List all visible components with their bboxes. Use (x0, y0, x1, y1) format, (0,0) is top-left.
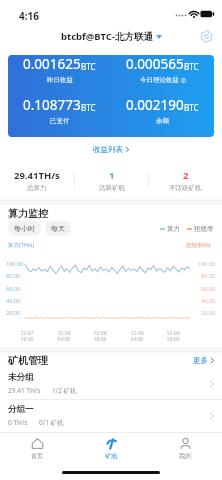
button[interactable]: 拒绝率 (187, 225, 214, 233)
staticText: 4:16 (19, 9, 39, 23)
button[interactable]: 0.001625 (8, 55, 111, 84)
button[interactable]: 每小时 (8, 221, 41, 236)
button[interactable]: 更多 (193, 356, 215, 365)
staticText: 未分组 (8, 372, 34, 383)
button[interactable]: 29.41TH/s (0, 169, 74, 192)
staticText: 0 TH/s (8, 418, 28, 427)
staticText: 我的 (179, 452, 191, 460)
staticText: 算力 (167, 225, 180, 233)
staticText: 80.00 (201, 272, 216, 279)
staticText: 每小时 (14, 224, 35, 233)
staticText: 总算力 (27, 184, 47, 192)
staticText: 首页 (31, 452, 43, 460)
button[interactable]: 1 (75, 169, 148, 192)
staticText: 29.41 TH/s (8, 386, 41, 395)
button[interactable]: 收益列表 (0, 137, 222, 161)
staticText: 12-07 16:00 (20, 330, 34, 343)
staticText: 余额 (156, 117, 169, 125)
button[interactable]: 0.002190 (111, 96, 214, 125)
button[interactable]: 矿池 (74, 433, 148, 464)
staticText: 2 (183, 169, 189, 182)
staticText: 12-09 04:00 (130, 330, 144, 343)
staticText: 更多 (193, 356, 208, 365)
staticText: 分组一 (8, 404, 34, 415)
staticText: 1 (109, 169, 115, 182)
staticText: 0.001625 (23, 55, 81, 73)
staticText: 20.00 (201, 309, 216, 316)
staticText: 40.00 (6, 297, 21, 304)
staticText: BTC (81, 102, 96, 113)
button[interactable]: Settings (196, 26, 216, 46)
button[interactable]: 分组一 (0, 400, 222, 431)
staticText: BTC (184, 102, 199, 113)
staticText: 29.41TH/s (14, 169, 60, 182)
staticText: 60.00 (201, 285, 216, 292)
staticText: 0/1 矿机 (39, 418, 64, 427)
staticText: 每天 (51, 224, 65, 233)
staticText: 矿机管理 (8, 354, 48, 367)
staticText: 12-08 16:00 (93, 330, 107, 343)
staticText: 算力(TH/s) (8, 241, 35, 249)
button[interactable]: 首页 (0, 433, 74, 464)
staticText: 0.000565 (126, 55, 184, 73)
button[interactable]: btcbf@BTC-北方联通 (61, 30, 162, 43)
button[interactable]: 2 (149, 169, 222, 192)
staticText: btcbf@BTC-北方联通 (61, 30, 153, 43)
staticText: 拒绝率(%) (186, 241, 211, 249)
staticText: 0.108773 (23, 96, 81, 114)
staticText: 算力监控 (8, 207, 48, 220)
staticText: 80.00 (6, 272, 21, 279)
button[interactable]: 未分组 (0, 368, 222, 400)
button[interactable]: 我的 (148, 433, 222, 464)
staticText: 活跃矿机 (99, 184, 125, 192)
staticText: 不活跃矿机 (169, 184, 202, 192)
staticText: 拒绝率 (194, 225, 214, 233)
button[interactable]: 0.000565 (111, 55, 214, 84)
staticText: BTC (81, 61, 96, 72)
staticText: 1/2 矿机 (52, 386, 77, 395)
button[interactable]: 每天 (45, 221, 71, 236)
staticText: 60.00 (6, 285, 21, 292)
staticText: BTC (184, 61, 199, 72)
staticText: 收益列表 (93, 145, 123, 154)
button[interactable]: 0.108773 (8, 96, 111, 125)
staticText: 今日理论收益 (140, 76, 179, 84)
staticText: 12-09 16:00 (166, 330, 180, 343)
staticText: 12-08 04:00 (57, 330, 71, 343)
staticText: 0.002190 (126, 96, 184, 114)
staticText: 已支付 (50, 117, 70, 125)
staticText: 100.00 (6, 260, 24, 267)
staticText: 100.00 (198, 260, 216, 267)
button[interactable]: 算力 (160, 225, 180, 233)
staticText: 昨日收益 (47, 76, 73, 84)
staticText: 矿池 (105, 452, 117, 460)
staticText: 20.00 (6, 309, 21, 316)
staticText: 40.00 (201, 297, 216, 304)
